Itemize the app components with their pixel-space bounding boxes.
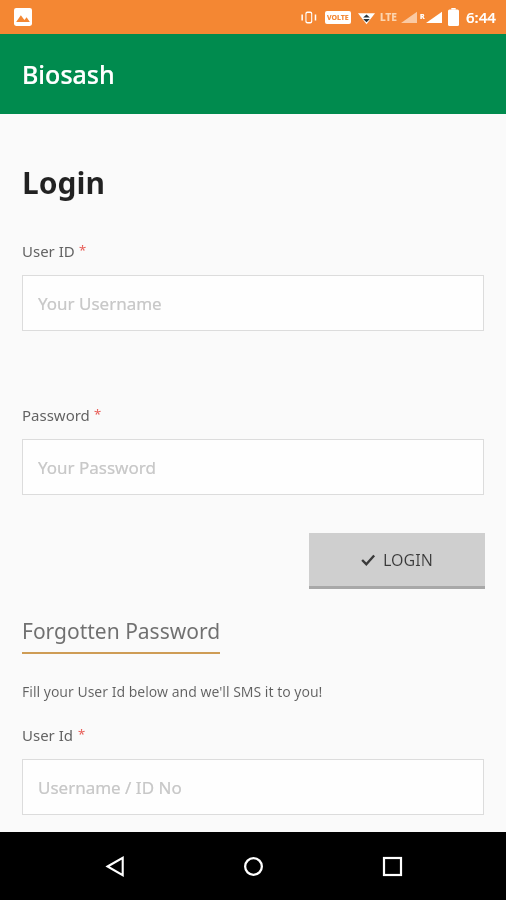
staticText: Login: [22, 162, 105, 203]
staticText: *: [79, 241, 87, 259]
staticText: Biosash: [22, 57, 115, 91]
staticText: User ID: [22, 241, 75, 261]
button[interactable]: LOGIN: [309, 533, 485, 589]
button[interactable]: Biosash: [0, 34, 506, 114]
staticText: Forgotten Password: [22, 617, 221, 646]
staticText: *: [94, 405, 102, 423]
staticText: Fill your User Id below and we'll SMS it…: [22, 682, 323, 701]
staticText: LTE: [380, 10, 397, 24]
staticText: R: [420, 12, 425, 22]
staticText: VOLTE: [327, 13, 349, 23]
staticText: Username / ID No: [38, 776, 182, 799]
staticText: 6:44: [466, 7, 496, 27]
staticText: Password: [22, 405, 90, 425]
button[interactable]: Recent apps: [368, 842, 416, 890]
button[interactable]: Back: [91, 842, 139, 890]
staticText: User Id: [22, 725, 74, 745]
button[interactable]: Username / ID No: [22, 759, 484, 815]
staticText: Your Username: [38, 292, 162, 315]
staticText: LOGIN: [383, 549, 433, 571]
button[interactable]: Your Password: [22, 439, 484, 495]
button[interactable]: Your Username: [22, 275, 484, 331]
staticText: *: [78, 725, 86, 743]
staticText: Your Password: [38, 456, 156, 479]
button[interactable]: Home: [229, 842, 277, 890]
